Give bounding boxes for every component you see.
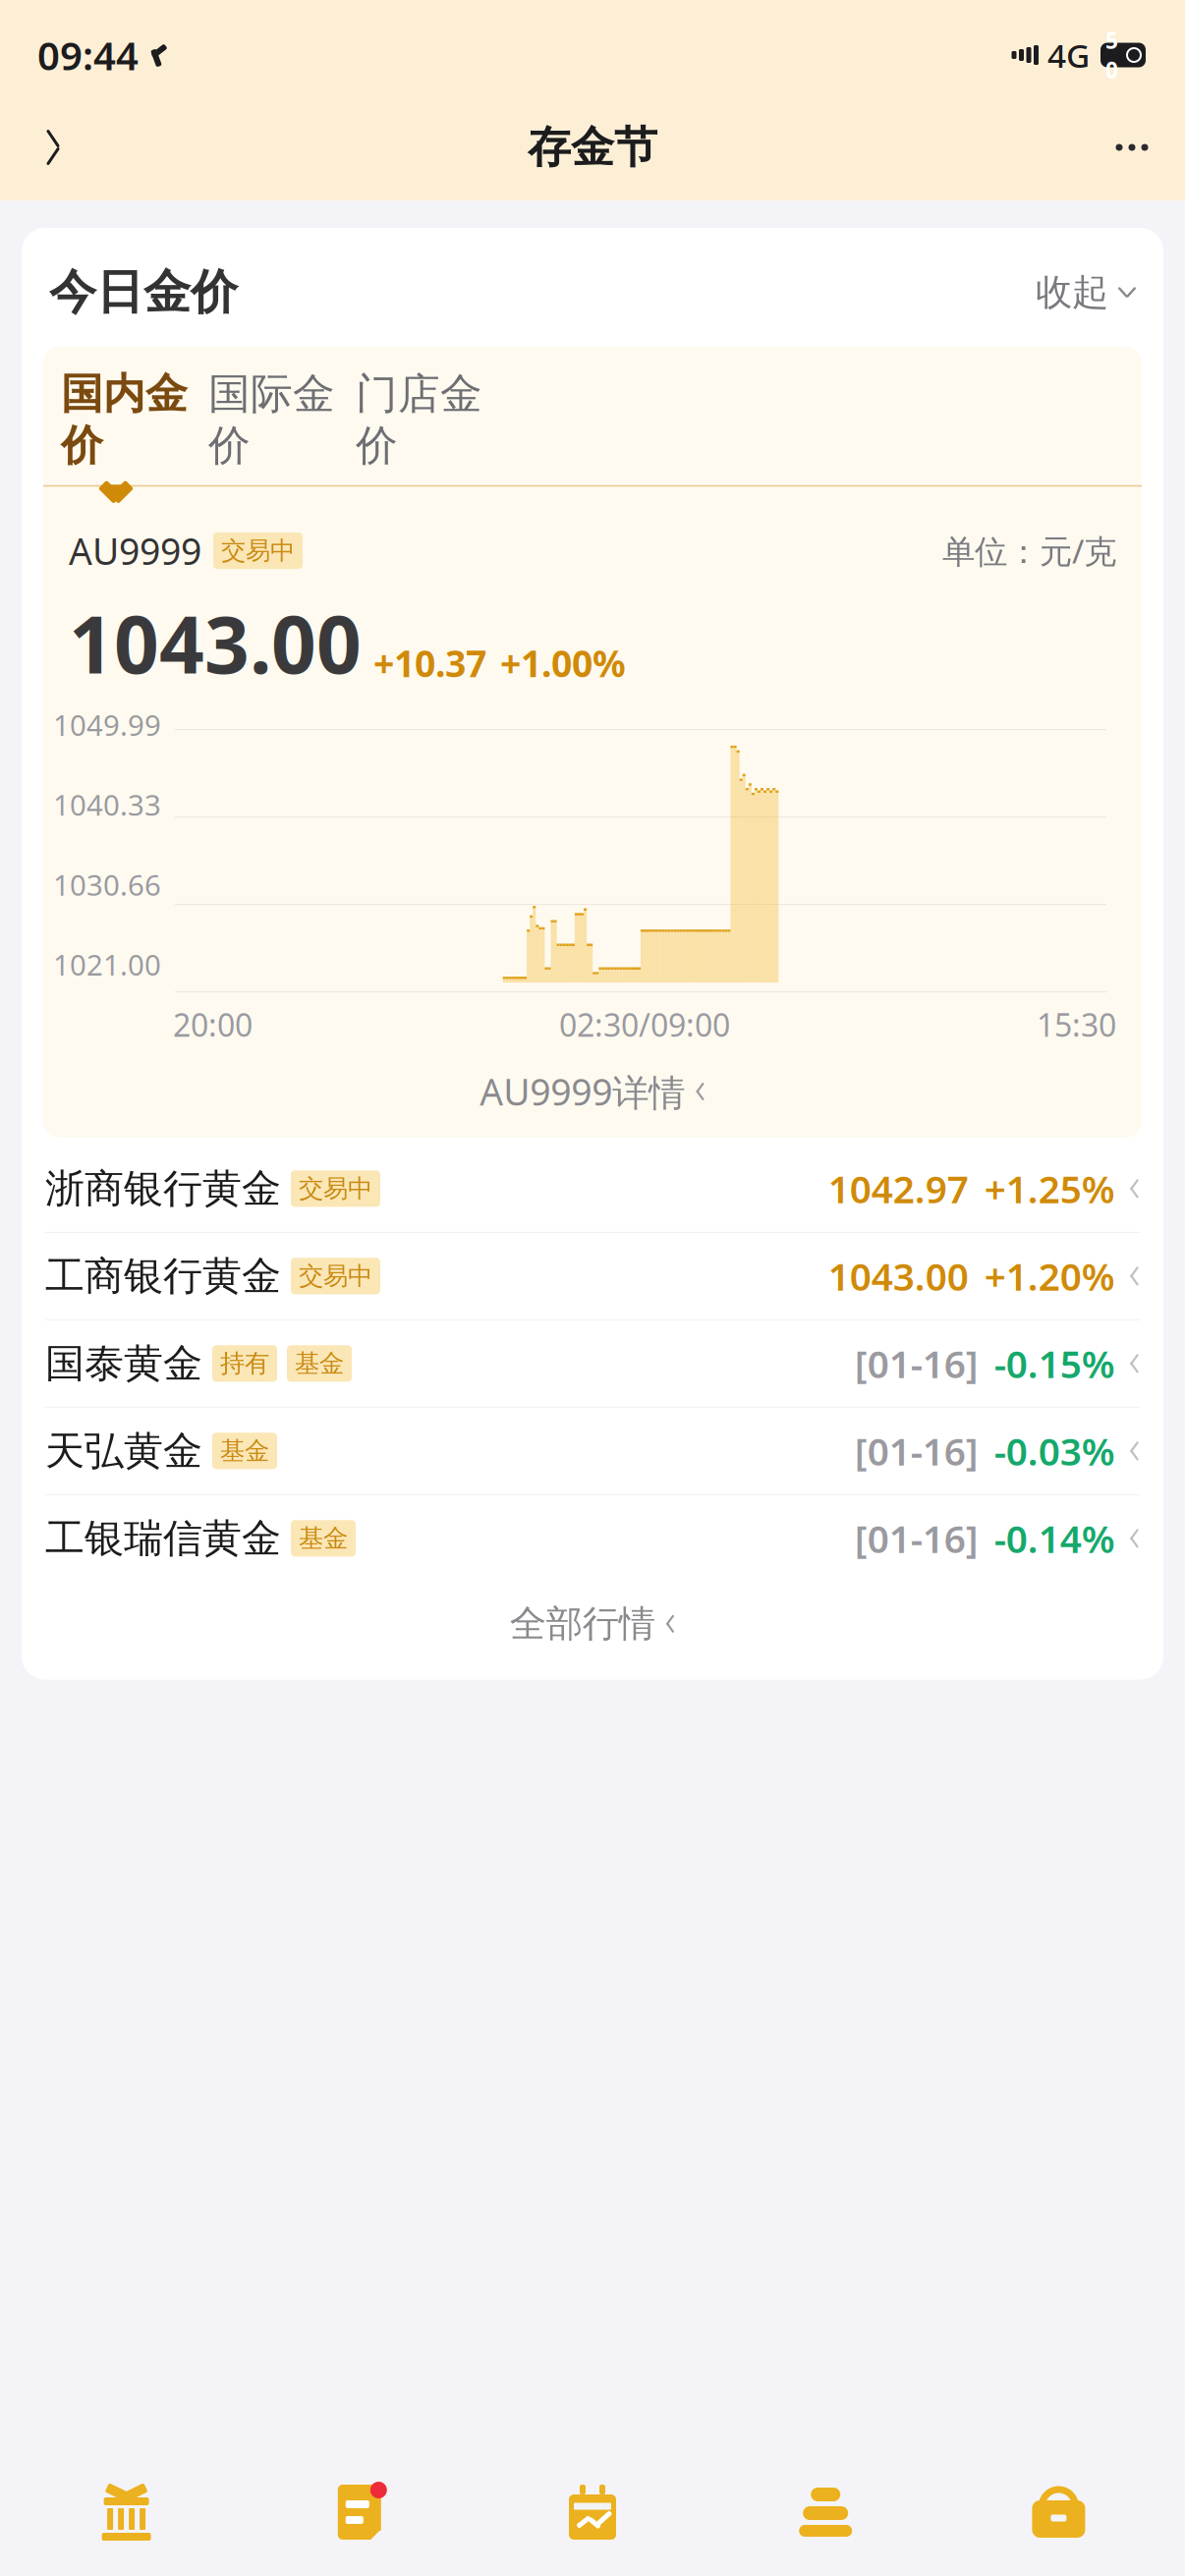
staticText: 工商银行黄金 — [45, 1252, 281, 1300]
staticText: 20:00 — [173, 1004, 253, 1045]
staticText: 交易中 — [299, 1173, 372, 1204]
button[interactable]: 天弘黄金 — [22, 1408, 1163, 1495]
staticText: +1.20% — [984, 1251, 1115, 1301]
staticText: 1042.97 — [828, 1163, 969, 1214]
staticText: -0.15% — [994, 1338, 1115, 1389]
button[interactable]: 浙商银行黄金 — [22, 1145, 1163, 1233]
button[interactable]: AU9999详情 — [43, 1045, 1142, 1138]
staticText: 今日金价 — [49, 263, 238, 321]
button[interactable]: 积存 — [709, 2484, 942, 2541]
button[interactable]: 全部行情 — [22, 1582, 1163, 1666]
staticText: 国泰黄金 — [45, 1339, 202, 1388]
staticText: 1049.99 — [53, 706, 161, 744]
staticText: 天弘黄金 — [45, 1427, 202, 1475]
staticText: 02:30/09:00 — [559, 1004, 730, 1045]
staticText: 交易中 — [221, 535, 295, 566]
staticText: 全部行情 — [510, 1601, 655, 1646]
staticText: [01-16] — [855, 1426, 978, 1476]
staticText: 1030.66 — [53, 865, 161, 904]
staticText: -0.03% — [994, 1426, 1115, 1476]
button[interactable]: Back — [24, 118, 83, 177]
staticText: 收起 — [1036, 270, 1108, 315]
button[interactable]: 国际金价 — [208, 368, 335, 471]
button[interactable]: More — [1102, 118, 1161, 177]
button[interactable]: 工银瑞信黄金 — [22, 1495, 1163, 1582]
button[interactable]: 银行 — [10, 2484, 243, 2541]
staticText: 持有 — [220, 1348, 269, 1379]
staticText: +1.25% — [984, 1163, 1115, 1214]
button[interactable]: 行情 — [476, 2484, 709, 2541]
staticText: 15:30 — [1037, 1004, 1116, 1045]
button[interactable]: 国泰黄金 — [22, 1320, 1163, 1408]
staticText: 浙商银行黄金 — [45, 1165, 281, 1213]
staticText: AU9999详情 — [480, 1067, 685, 1116]
staticText: 09:44 — [37, 29, 139, 81]
staticText: 基金 — [220, 1436, 269, 1466]
staticText: AU9999 — [69, 526, 201, 575]
staticText: 4G — [1047, 33, 1090, 77]
staticText: 基金 — [299, 1523, 348, 1554]
staticText: +10.37 — [373, 639, 486, 687]
staticText: 单位：元/克 — [942, 529, 1116, 572]
staticText: 国内金价 — [61, 368, 188, 471]
button[interactable]: 工商银行黄金 — [22, 1233, 1163, 1320]
button[interactable]: 国内金价 — [61, 368, 188, 471]
staticText: 1021.00 — [53, 945, 161, 984]
button[interactable]: 消息 — [243, 2484, 476, 2541]
staticText: 1043.00 — [69, 591, 362, 695]
staticText: 50 — [1105, 25, 1118, 85]
button[interactable]: 收起 — [1036, 270, 1136, 315]
button[interactable]: 门店金价 — [356, 368, 482, 471]
staticText: [01-16] — [855, 1513, 978, 1564]
staticText: +1.00% — [500, 639, 626, 687]
staticText: 门店金价 — [356, 368, 482, 471]
staticText: 工银瑞信黄金 — [45, 1514, 281, 1562]
button[interactable]: 我的 — [942, 2484, 1175, 2541]
staticText: 1043.00 — [828, 1251, 969, 1301]
staticText: 交易中 — [299, 1261, 372, 1291]
staticText: -0.14% — [994, 1513, 1115, 1564]
staticText: 基金 — [295, 1348, 344, 1379]
staticText: 国际金价 — [208, 368, 335, 471]
staticText: [01-16] — [855, 1338, 978, 1389]
staticText: 1040.33 — [53, 785, 161, 824]
staticText: 存金节 — [528, 121, 657, 174]
